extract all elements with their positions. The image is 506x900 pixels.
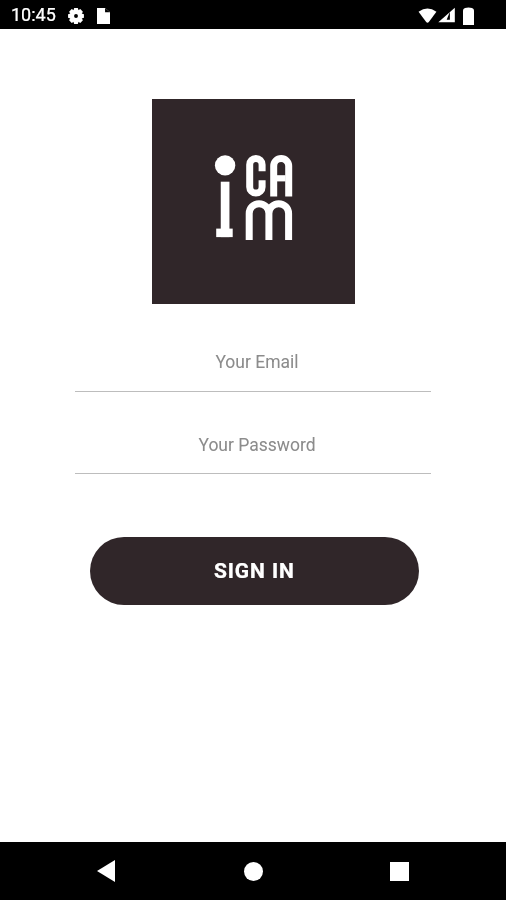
button[interactable]: SIGN IN [90, 537, 419, 605]
staticText: SIGN IN [214, 559, 295, 584]
button[interactable]: Recent apps [369, 842, 429, 900]
button[interactable]: Your Password [75, 435, 431, 474]
button[interactable]: Your Email [75, 352, 431, 392]
button[interactable]: Home [223, 842, 283, 900]
staticText: Your Email [215, 352, 299, 373]
staticText: 10:45 [11, 4, 56, 25]
button[interactable]: Back [76, 842, 136, 900]
staticText: Your Password [198, 435, 316, 456]
